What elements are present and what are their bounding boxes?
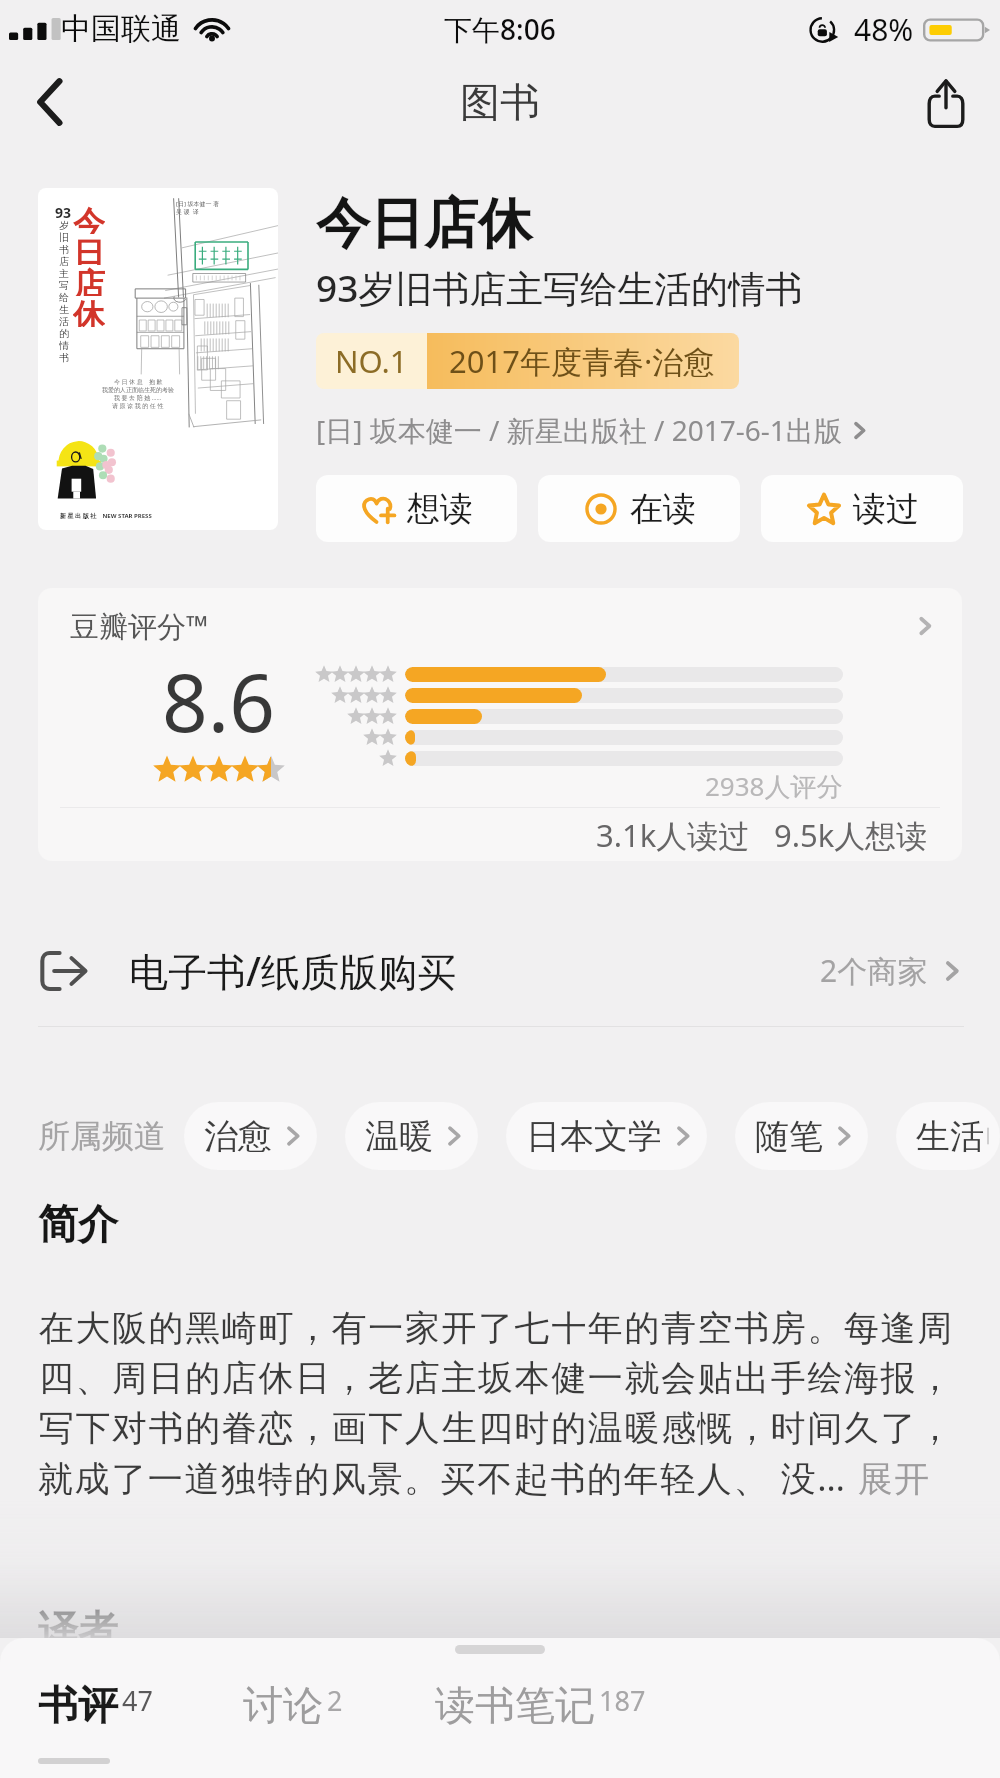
staticText: 2个商家 — [820, 950, 928, 991]
staticText: 9.5k人想读 — [774, 814, 928, 856]
button[interactable]: [日] 坂本健一 / 新星出版社 / 2017-6-1出版 — [316, 411, 870, 449]
staticText: 写下对书的眷恋，画下人生四时的温暖感慨，时间久了， — [38, 1406, 953, 1450]
staticText: 豆瓣评分™ — [70, 606, 209, 646]
staticText: 8.6 — [162, 646, 275, 755]
staticText: 读书笔记 — [435, 1680, 595, 1730]
staticText: 2017年度青春·治愈 — [449, 340, 715, 382]
staticText: 讨论 — [243, 1680, 323, 1730]
staticText: 日本文学 — [526, 1115, 662, 1158]
button[interactable]: 书评 — [38, 1680, 153, 1778]
staticText: 书评 — [38, 1680, 118, 1730]
staticText: 活 — [59, 315, 69, 327]
button[interactable]: 读过 — [761, 475, 963, 542]
staticText: 随笔 — [755, 1115, 823, 1158]
staticText: 中国联通 — [61, 10, 181, 48]
button[interactable]: 豆瓣评分™ — [38, 588, 962, 807]
staticText: 3.1k人读过 — [596, 814, 750, 856]
button[interactable]: Back — [9, 62, 89, 142]
button[interactable]: 治愈 — [204, 1102, 305, 1170]
staticText: 休 — [73, 296, 105, 327]
staticText: 日 — [73, 234, 105, 265]
staticText: 简介 — [38, 1199, 118, 1249]
staticText: 47 — [122, 1682, 153, 1719]
button[interactable]: Share — [906, 62, 986, 142]
button[interactable]: 生活 — [916, 1102, 988, 1170]
staticText: 主 — [59, 267, 69, 279]
staticText: 所属频道 — [38, 1116, 166, 1156]
staticText: 187 — [599, 1682, 646, 1719]
staticText: 店 — [59, 255, 69, 267]
staticText: 今 日 休 息 抱 歉 — [114, 378, 163, 386]
staticText: 今日店休 — [316, 190, 532, 258]
staticText: 2938人评分 — [705, 768, 843, 804]
staticText: 在大阪的黑崎町，有一家开了七十年的青空书房。每逢周 — [38, 1306, 953, 1350]
button[interactable]: 3.1k人读过 — [38, 808, 928, 861]
button[interactable]: 电子书/纸质版购买 — [38, 915, 964, 1026]
staticText: 2 — [327, 1682, 343, 1719]
staticText: NO.1 — [335, 340, 408, 382]
button[interactable]: 日本文学 — [526, 1102, 695, 1170]
staticText: [日] 坂本健一 / 新星出版社 / 2017-6-1出版 — [316, 411, 842, 449]
staticText: 新 星 出 版 社 NEW STAR PRESS — [60, 512, 152, 520]
staticText: 治愈 — [204, 1115, 272, 1158]
staticText: 岁 — [59, 219, 69, 231]
button[interactable]: 随笔 — [755, 1102, 856, 1170]
staticText: 我 要 去 陪 她 …… — [114, 394, 162, 402]
staticText: 译者 — [38, 1605, 118, 1655]
staticText: 93岁旧书店主写给生活的情书 — [316, 262, 803, 313]
staticText: [日] 坂本健一 著 — [176, 200, 220, 208]
staticText: 情 — [59, 339, 69, 351]
button[interactable]: 讨论 — [243, 1680, 343, 1778]
staticText: 店 — [73, 265, 105, 296]
staticText: 书 — [59, 243, 69, 255]
staticText: 四、周日的店休日，老店主坂本健一就会贴出手绘海报， — [38, 1356, 953, 1400]
staticText: 的 — [59, 327, 69, 339]
staticText: 生活 — [916, 1115, 984, 1158]
staticText: 温暖 — [365, 1115, 433, 1158]
button[interactable]: 温暖 — [365, 1102, 466, 1170]
staticText: 93 — [55, 203, 72, 219]
button[interactable]: 想读 — [316, 475, 517, 542]
staticText: 48% — [854, 9, 914, 50]
button[interactable]: 展开 — [847, 1454, 931, 1502]
button[interactable]: 在读 — [538, 475, 740, 542]
staticText: 读过 — [853, 488, 919, 530]
button[interactable]: 读书笔记 — [435, 1680, 646, 1778]
staticText: 就成了一道独特的风景。买不起书的年轻人、 没… — [38, 1454, 847, 1502]
staticText: 写 — [59, 279, 69, 291]
button[interactable]: Book cover: 今日店休 — [38, 188, 278, 530]
staticText: 给 — [59, 291, 69, 303]
staticText: 电子书/纸质版购买 — [129, 944, 457, 997]
staticText: 下午8:06 — [444, 10, 556, 48]
staticText: 生 — [59, 303, 69, 315]
staticText: 请 原 谅 我 的 任 性 — [112, 402, 164, 410]
staticText: 图书 — [460, 77, 540, 127]
staticText: 今 — [73, 203, 105, 234]
staticText: 在读 — [630, 488, 696, 530]
staticText: 书 — [59, 351, 69, 363]
staticText: 想读 — [407, 488, 473, 530]
staticText: 旧 — [59, 231, 69, 243]
button[interactable]: NO.1 — [316, 333, 739, 389]
staticText: 吴 谡 译 — [176, 208, 199, 216]
staticText: 我爱的人正面临生死的考验 — [102, 386, 174, 394]
